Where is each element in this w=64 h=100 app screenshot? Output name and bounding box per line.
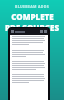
staticText: COMPLETE — [11, 11, 54, 22]
staticText: PDF SOURCES — [5, 22, 59, 33]
staticText: BLUEBEAM ADDS — [15, 4, 49, 9]
